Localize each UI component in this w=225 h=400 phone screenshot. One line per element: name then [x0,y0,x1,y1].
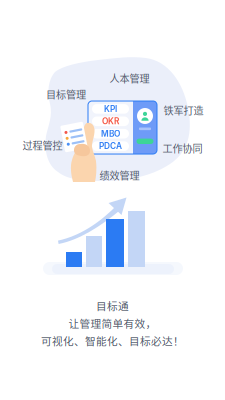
staticText: 让管理简单有效， [68,315,156,331]
staticText: 绩效管理 [99,168,139,182]
staticText: 人本管理 [109,71,149,85]
staticText: MBO [101,129,120,139]
staticText: OKR [102,116,119,126]
staticText: 目标通 [96,298,129,313]
staticText: 工作协同 [162,141,202,155]
staticText: PDCA [99,141,122,151]
staticText: KPI [104,104,117,114]
staticText: 目标管理 [46,87,86,101]
staticText: 可视化、智能化、目标必达！ [41,333,184,348]
staticText: 过程管控 [22,138,62,152]
staticText: 铁军打造 [163,103,203,117]
